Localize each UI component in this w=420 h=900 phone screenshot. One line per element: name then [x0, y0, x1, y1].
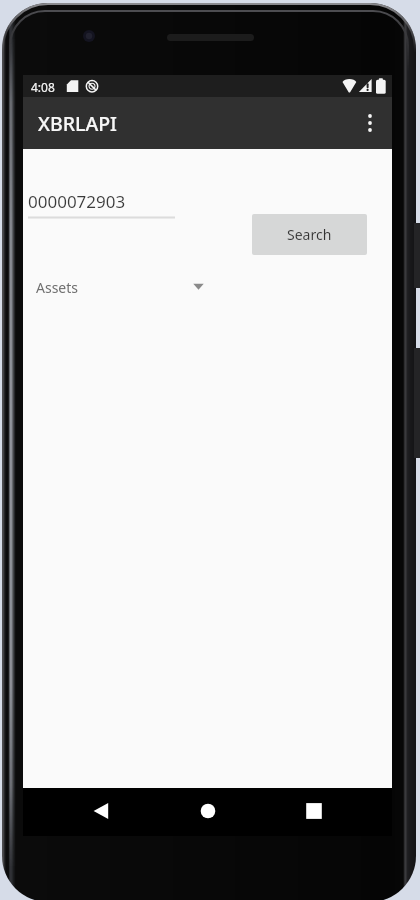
button[interactable]: 0000072903: [28, 190, 175, 221]
staticText: Search: [287, 225, 332, 244]
button[interactable]: Search: [252, 214, 367, 255]
button[interactable]: Home: [184, 787, 232, 835]
button[interactable]: Assets: [28, 271, 213, 311]
button[interactable]: Back: [77, 787, 125, 835]
staticText: 4:08: [31, 79, 55, 95]
staticText: XBRLAPI: [38, 110, 117, 137]
staticText: Assets: [36, 278, 79, 297]
button[interactable]: More options: [348, 99, 392, 147]
button[interactable]: Recent apps: [290, 787, 338, 835]
staticText: 0000072903: [28, 190, 126, 213]
